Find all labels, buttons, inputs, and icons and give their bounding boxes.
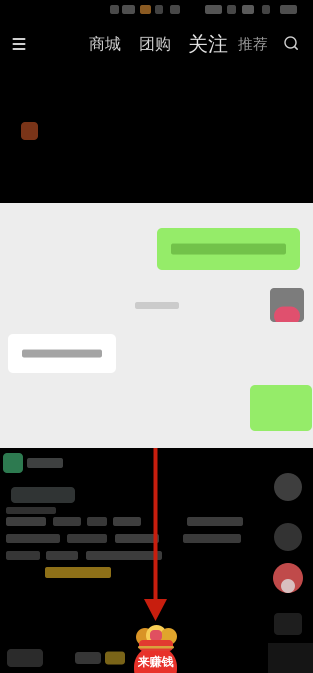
button[interactable]: Share <box>68 643 108 673</box>
staticText: 推荐 <box>238 35 268 53</box>
button[interactable]: 团购 <box>138 32 172 56</box>
button[interactable]: Menu <box>6 32 32 56</box>
button[interactable]: 关注 <box>187 32 229 56</box>
staticText: 商城 <box>89 34 121 54</box>
button[interactable]: Gifts <box>99 643 131 673</box>
button[interactable]: Profile <box>274 473 302 501</box>
staticText: 关注 <box>188 32 228 56</box>
button[interactable]: Earn money <box>134 622 177 672</box>
staticText: 来赚钱 <box>137 655 173 669</box>
button[interactable]: Share <box>274 613 302 635</box>
button[interactable]: 推荐 <box>236 32 270 56</box>
button[interactable]: Write a comment <box>0 643 50 673</box>
button[interactable]: 商城 <box>88 32 122 56</box>
staticText: 团购 <box>139 34 171 54</box>
button[interactable]: Search <box>281 32 303 56</box>
button[interactable]: Comment <box>273 563 303 593</box>
button[interactable]: Like <box>274 523 302 551</box>
